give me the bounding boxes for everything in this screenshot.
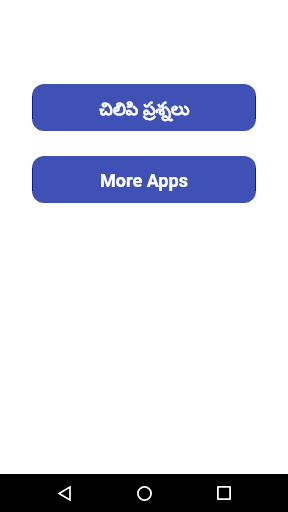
- button[interactable]: Back: [44, 474, 84, 512]
- button[interactable]: More Apps: [32, 156, 256, 203]
- button[interactable]: Home: [124, 474, 164, 512]
- button[interactable]: Recent apps: [204, 474, 244, 512]
- button[interactable]: చిలిపి ప్రశ్నలు: [32, 84, 256, 131]
- staticText: చిలిపి ప్రశ్నలు: [99, 100, 190, 124]
- staticText: More Apps: [100, 170, 188, 191]
